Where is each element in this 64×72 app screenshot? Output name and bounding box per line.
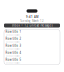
staticText: Row title 2 <box>5 37 21 40</box>
staticText: Secondary detail text <box>5 62 19 64</box>
staticText: Secondary detail text <box>5 41 19 43</box>
staticText: Tuesday, March 12 <box>20 19 44 23</box>
staticText: Secondary detail text <box>5 55 19 57</box>
staticText: Row title 1 <box>5 30 21 33</box>
staticText: Row title 5 <box>5 58 21 61</box>
staticText: Inbox • 12 unread messages <box>11 24 52 27</box>
staticText: 9:41 AM <box>26 15 38 19</box>
staticText: Secondary detail text <box>5 48 19 50</box>
staticText: Row title 4 <box>5 51 21 54</box>
staticText: Row title 3 <box>5 44 21 47</box>
staticText: Secondary detail text <box>5 34 19 36</box>
